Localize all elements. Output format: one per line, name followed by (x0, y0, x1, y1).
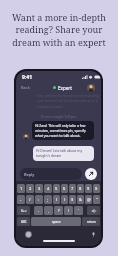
staticText: Hi Dream! Lets talk about my tonight's d… (36, 148, 91, 158)
staticText: Hi Zara! This will only take a few minut… (35, 123, 91, 138)
staticText: 1 (20, 186, 23, 191)
button[interactable]: ? (54, 206, 63, 215)
staticText: @ (87, 197, 91, 202)
staticText: , (48, 208, 50, 213)
button[interactable]: Back (20, 84, 31, 91)
button[interactable]: 7 (69, 184, 76, 193)
staticText: 3 (38, 186, 41, 191)
staticText: - (20, 197, 22, 202)
button[interactable]: ! (64, 206, 73, 215)
staticText: : (38, 197, 40, 202)
staticText: / (29, 197, 31, 202)
button[interactable]: ( (53, 195, 60, 204)
staticText: space (52, 220, 61, 224)
button[interactable]: 1 (17, 184, 25, 193)
button[interactable]: ; (44, 195, 52, 204)
button[interactable]: ' (74, 206, 83, 215)
staticText: ABC (21, 220, 27, 224)
button[interactable]: Backspace (87, 206, 100, 215)
staticText: ? (58, 208, 60, 213)
staticText: ; (47, 197, 49, 202)
button[interactable]: / (26, 195, 34, 204)
button[interactable]: $ (69, 195, 76, 204)
button[interactable]: Reply (24, 168, 78, 180)
staticText: ! (68, 208, 70, 213)
button[interactable]: Dictation (90, 231, 97, 238)
button[interactable]: 3 (35, 184, 43, 193)
staticText: Back (21, 85, 30, 90)
staticText: 8 (79, 186, 82, 191)
staticText: 4 (47, 186, 50, 191)
button[interactable]: 0 (93, 184, 100, 193)
staticText: Hey, still having trouble understanding … (37, 93, 100, 109)
staticText: 5 (55, 186, 58, 191)
staticText: . (38, 208, 40, 213)
staticText: Dream insight 3:45pm (41, 114, 77, 119)
staticText: return (87, 220, 96, 224)
staticText: 7 (71, 186, 74, 191)
staticText: ( (56, 197, 58, 202)
staticText: Reply (24, 172, 35, 177)
button[interactable]: Send (85, 168, 97, 180)
button[interactable]: @ (85, 195, 92, 204)
staticText: & (79, 197, 82, 202)
button[interactable]: Profile (87, 84, 95, 92)
staticText: 0 (95, 186, 98, 191)
staticText: 6 (63, 186, 66, 191)
button[interactable]: 8 (77, 184, 84, 193)
button[interactable]: 5 (53, 184, 60, 193)
button[interactable]: 2 (26, 184, 34, 193)
button[interactable]: ABC (17, 217, 30, 226)
button[interactable]: 6 (61, 184, 68, 193)
button[interactable]: Emoji keyboard (25, 231, 32, 238)
button[interactable]: return (82, 217, 100, 226)
staticText: #+= (21, 209, 27, 213)
staticText: 9 (87, 186, 90, 191)
staticText: ' (78, 208, 79, 213)
button[interactable]: , (44, 206, 53, 215)
staticText: " (96, 197, 98, 202)
button[interactable]: ) (61, 195, 68, 204)
staticText: ) (64, 197, 66, 202)
button[interactable]: #+= (17, 206, 30, 215)
button[interactable]: : (35, 195, 43, 204)
button[interactable]: - (17, 195, 25, 204)
staticText: 2 (29, 186, 32, 191)
button[interactable]: 9 (85, 184, 92, 193)
button[interactable]: . (34, 206, 43, 215)
staticText: Expert (58, 85, 72, 91)
staticText: Want a more in-depth reading? Share your… (12, 11, 106, 49)
staticText: 9:41 (22, 74, 32, 81)
staticText: $ (71, 197, 74, 202)
button[interactable]: space (31, 217, 81, 226)
button[interactable]: & (77, 195, 84, 204)
button[interactable]: 4 (44, 184, 52, 193)
button[interactable]: " (93, 195, 100, 204)
